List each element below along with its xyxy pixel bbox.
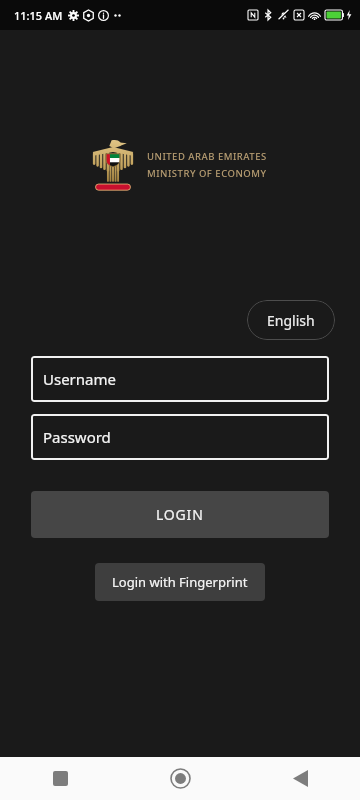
button[interactable]: Back (240, 757, 360, 800)
button[interactable]: Recent apps (0, 757, 120, 800)
staticText: Password (43, 427, 111, 447)
staticText: LOGIN (156, 505, 204, 524)
button[interactable]: Username (31, 356, 329, 402)
staticText: MINISTRY OF ECONOMY (147, 167, 267, 180)
button[interactable]: Login with Fingerprint (95, 563, 265, 601)
staticText: Username (43, 369, 116, 389)
staticText: UNITED ARAB EMIRATES (147, 150, 267, 163)
staticText: English (267, 311, 315, 330)
button[interactable]: LOGIN (31, 491, 329, 538)
button[interactable]: Password (31, 414, 329, 460)
staticText: Login with Fingerprint (112, 573, 248, 591)
staticText: 11:15 AM (14, 8, 63, 23)
button[interactable]: English (247, 300, 335, 340)
button[interactable]: Home (120, 757, 240, 800)
